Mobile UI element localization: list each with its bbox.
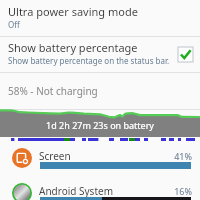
- button[interactable]: Ultra power saving mode: [0, 0, 200, 37]
- button[interactable]: Show battery percentage: [0, 37, 200, 72]
- staticText: 41%: [160, 150, 192, 162]
- staticText: 58% - Not charging: [8, 84, 98, 98]
- staticText: Show battery percentage on the status ba…: [8, 55, 170, 66]
- staticText: 16%: [160, 185, 192, 197]
- staticText: Off: [8, 19, 20, 30]
- button[interactable]: Android System: [0, 180, 200, 200]
- staticText: Show battery percentage: [8, 40, 138, 55]
- staticText: Screen: [39, 149, 71, 163]
- button[interactable]: Show battery percentage checkbox: [178, 47, 193, 62]
- staticText: Ultra power saving mode: [8, 4, 138, 19]
- button[interactable]: Screen: [0, 145, 200, 180]
- staticText: 1d 2h 27m 23s on battery: [0, 119, 200, 131]
- staticText: Android System: [39, 184, 114, 198]
